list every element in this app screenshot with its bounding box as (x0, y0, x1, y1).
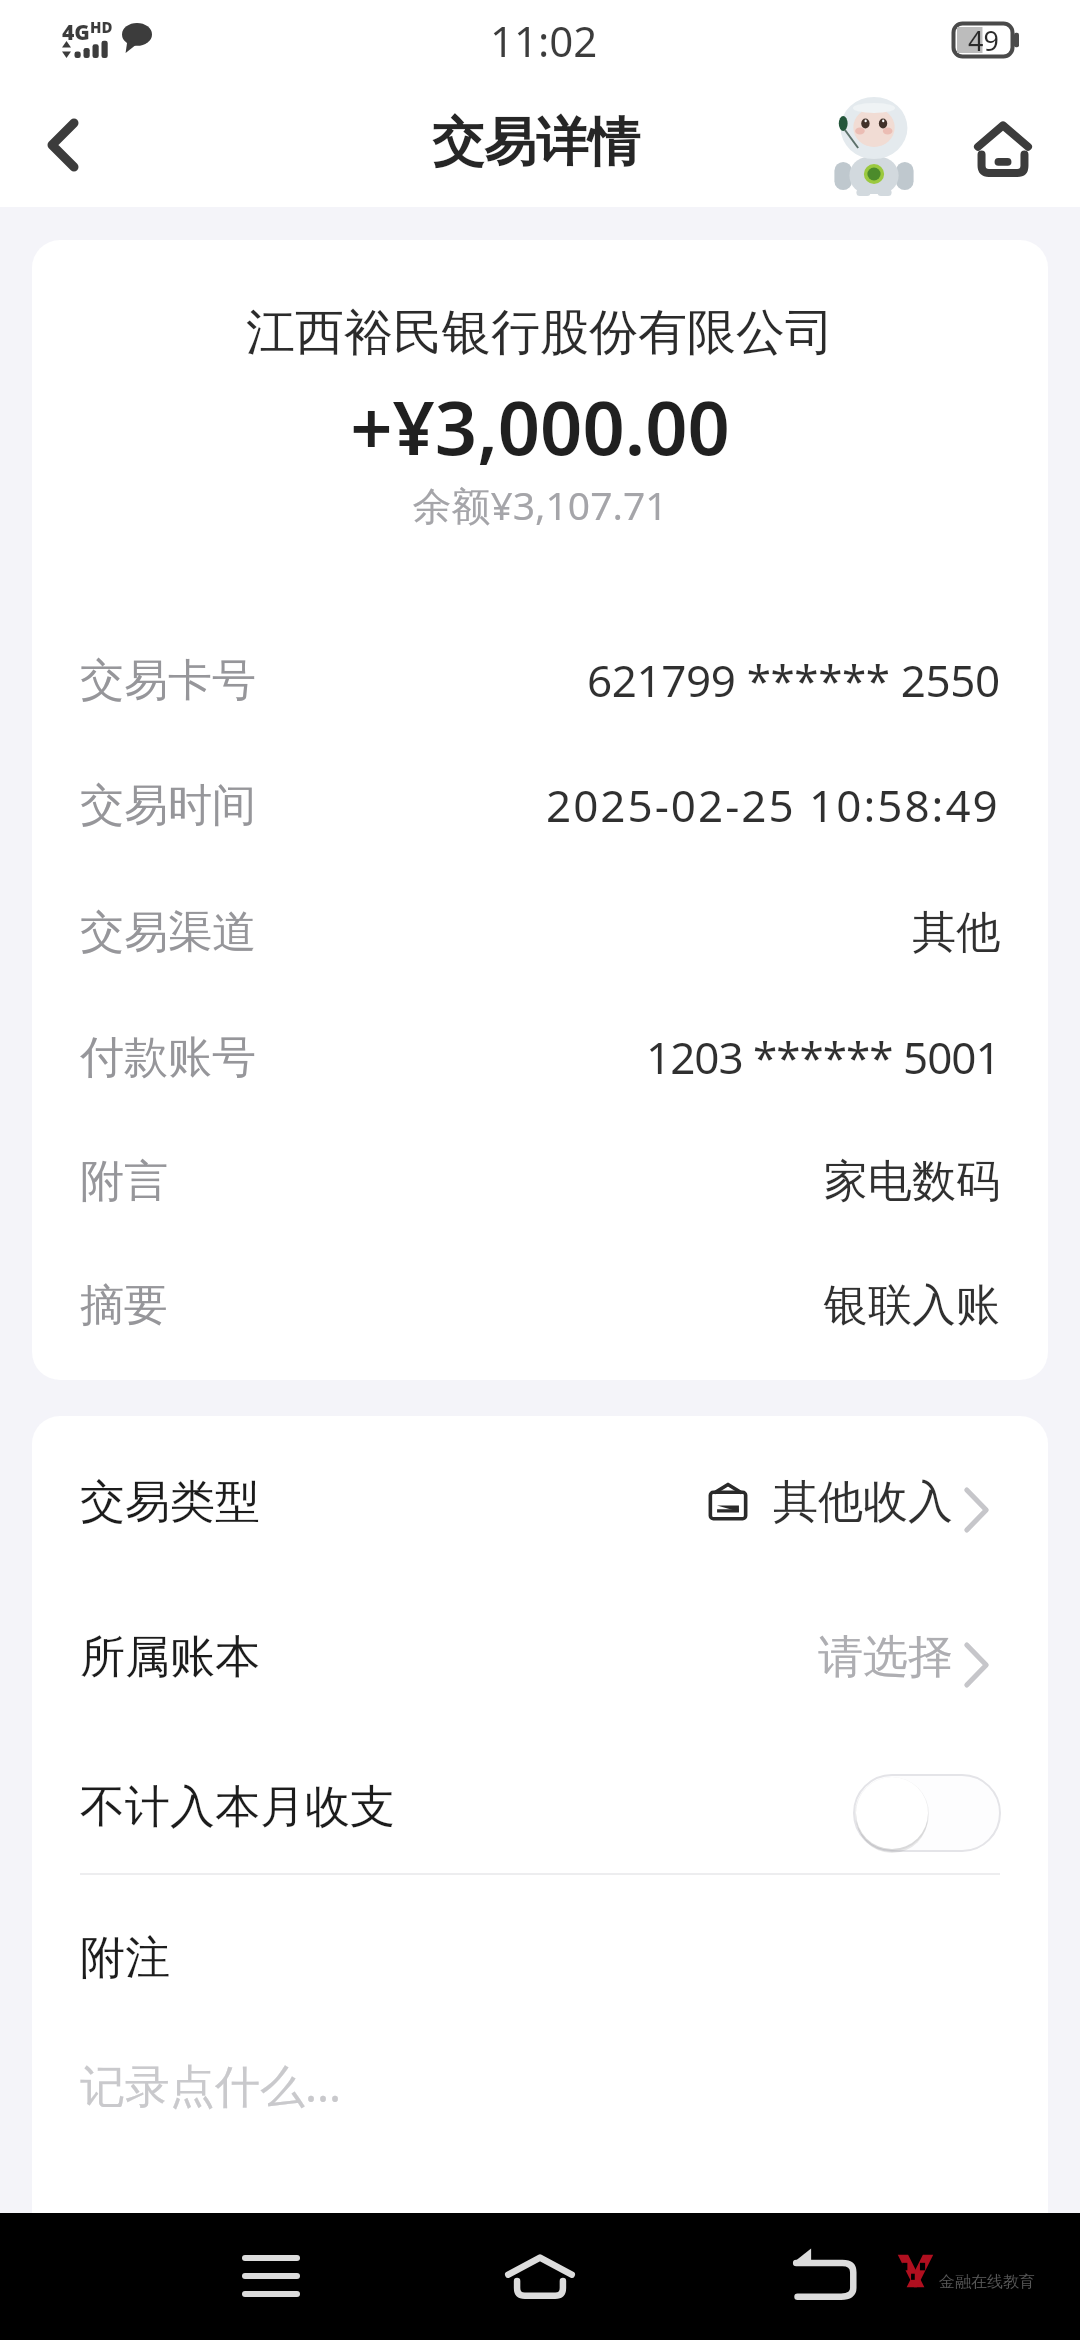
button[interactable]: Assistant (824, 96, 924, 196)
staticText: 交易卡号 (80, 653, 256, 708)
staticText: 49 (968, 22, 999, 58)
staticText: 1203 ****** 5001 (646, 1027, 1000, 1087)
button[interactable]: Exclude from monthly total (854, 1775, 1000, 1851)
staticText: 不计入本月收支 (80, 1779, 395, 1836)
staticText: HD (90, 17, 113, 37)
staticText: 交易详情 (432, 110, 640, 176)
button[interactable]: Home (953, 99, 1053, 199)
staticText: 付款账号 (80, 1030, 256, 1085)
staticText: 记录点什么... (80, 2054, 342, 2115)
staticText: 银联入账 (824, 1278, 1000, 1333)
staticText: 其他收入 (773, 1474, 953, 1531)
staticText: 附注 (80, 1930, 170, 1987)
staticText: 2025-02-25 10:58:49 (546, 775, 1000, 835)
staticText: 余额¥3,107.71 (32, 478, 1048, 531)
staticText: 江西裕民银行股份有限公司 (32, 302, 1048, 364)
button[interactable]: 交易类型 (80, 1427, 990, 1577)
staticText: 交易时间 (80, 778, 256, 833)
staticText: 所属账本 (80, 1629, 260, 1686)
button[interactable]: Home (490, 2226, 590, 2326)
button[interactable]: Back (15, 97, 111, 193)
button[interactable]: Menu (221, 2226, 321, 2326)
button[interactable]: Back (772, 2226, 872, 2326)
staticText: 请选择 (818, 1629, 953, 1686)
staticText: 11:02 (490, 12, 598, 69)
button[interactable]: 所属账本 (80, 1582, 990, 1732)
staticText: 交易类型 (80, 1474, 260, 1531)
staticText: 4G (62, 18, 90, 47)
staticText: +¥3,000.00 (32, 376, 1048, 477)
staticText: 其他 (912, 905, 1000, 960)
staticText: 金融在线教育 (939, 2272, 1035, 2292)
staticText: 家电数码 (824, 1154, 1000, 1209)
staticText: 摘要 (80, 1278, 168, 1333)
staticText: 附言 (80, 1154, 168, 1209)
staticText: 交易渠道 (80, 905, 256, 960)
staticText: 621799 ****** 2550 (587, 650, 1000, 710)
